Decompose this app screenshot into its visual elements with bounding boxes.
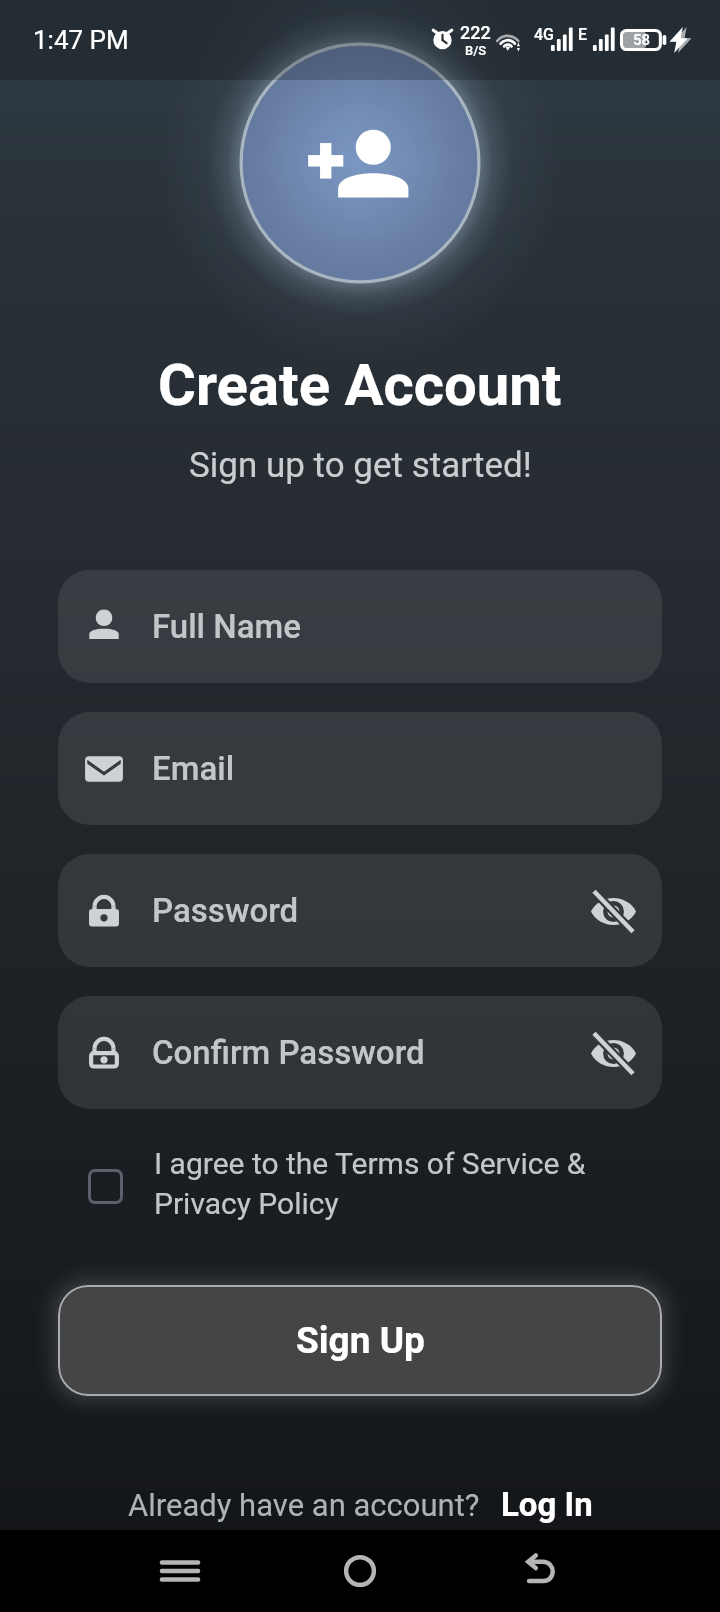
staticText: 58 — [633, 31, 651, 49]
button[interactable]: Show password — [574, 872, 652, 950]
staticText: Password — [152, 891, 299, 930]
button[interactable]: Home — [270, 1530, 450, 1612]
button[interactable]: Email — [58, 712, 662, 825]
staticText: B/S — [465, 43, 487, 58]
button[interactable]: Full Name — [58, 570, 662, 683]
button[interactable]: Show password — [574, 1014, 652, 1092]
button[interactable]: I agree to the Terms of Service & Privac… — [88, 1146, 680, 1222]
staticText: I agree to the Terms of Service & Privac… — [154, 1146, 586, 1222]
staticText: Full Name — [152, 607, 301, 646]
staticText: E — [578, 25, 588, 44]
staticText: Email — [152, 749, 235, 788]
button[interactable]: Recent apps — [90, 1530, 270, 1612]
staticText: 1:47 PM — [33, 25, 129, 55]
staticText: Confirm Password — [152, 1033, 425, 1072]
staticText: Log In — [501, 1485, 593, 1524]
button[interactable]: Password — [58, 854, 662, 967]
button[interactable]: Log In — [501, 1485, 593, 1524]
staticText: 4G — [534, 25, 554, 44]
staticText: Sign Up — [296, 1319, 425, 1362]
staticText: Already have an account? — [128, 1487, 480, 1523]
button[interactable]: Back — [450, 1530, 630, 1612]
staticText: 222 — [460, 22, 491, 43]
staticText: Sign up to get started! — [189, 445, 532, 486]
staticText: Create Account — [158, 351, 562, 419]
button[interactable]: Confirm Password — [58, 996, 662, 1109]
button[interactable]: Sign Up — [58, 1285, 662, 1396]
